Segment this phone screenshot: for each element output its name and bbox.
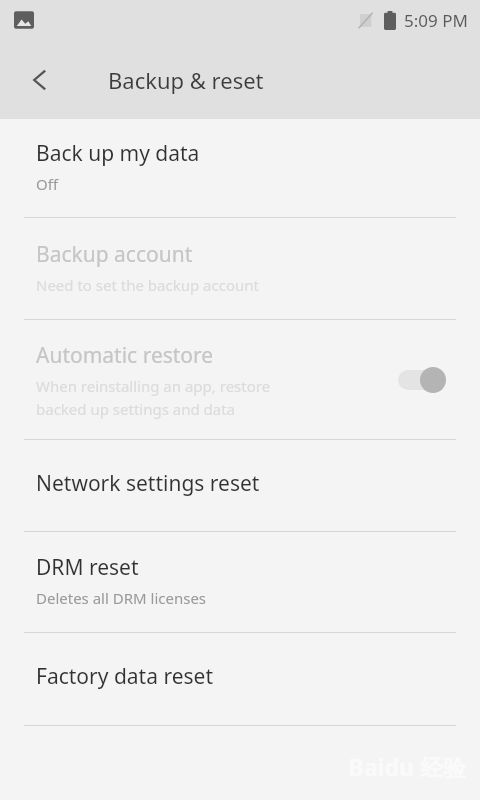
staticText: Off [36,174,59,194]
button[interactable]: Automatic restore toggle [394,363,456,397]
staticText: Backup account [36,240,193,269]
staticText: Deletes all DRM licenses [36,588,207,608]
staticText: Backup & reset [108,65,264,95]
staticText: Automatic restore [36,341,214,370]
staticText: Network settings reset [36,469,260,498]
button[interactable]: Factory data reset [0,633,480,725]
button[interactable]: Back up my data [0,119,480,217]
button[interactable]: Backup account [0,218,480,319]
staticText: Need to set the backup account [36,275,259,295]
button[interactable]: Automatic restore [0,320,480,439]
staticText: Back up my data [36,139,200,168]
button[interactable]: DRM reset [0,532,480,632]
staticText: backed up settings and data [36,399,236,419]
button[interactable]: Back [14,54,66,106]
button[interactable]: Network settings reset [0,440,480,531]
staticText: 5:09 PM [404,9,468,32]
staticText: Factory data reset [36,662,213,691]
staticText: DRM reset [36,553,139,582]
staticText: When reinstalling an app, restore [36,376,271,396]
